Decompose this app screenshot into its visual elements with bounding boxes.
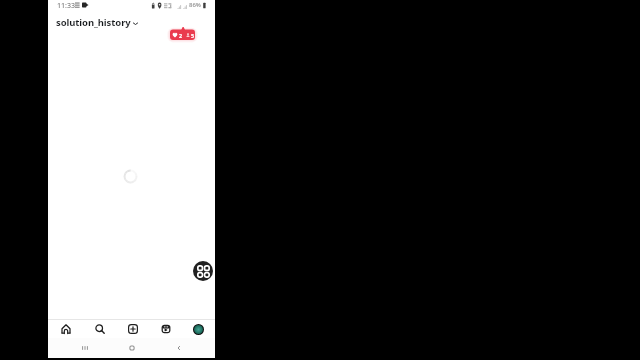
button[interactable]: solution_history [56,16,138,29]
button[interactable]: Home [120,338,144,358]
staticText: 2 [179,32,183,39]
staticText: solution_history [56,16,131,29]
staticText: 86% [189,1,201,9]
button[interactable]: Reels [149,320,182,338]
button[interactable]: Home [49,320,83,338]
button[interactable]: Profile [182,320,215,338]
staticText: 5 [191,32,195,39]
button[interactable]: Back [167,338,191,358]
button[interactable]: Search [83,320,116,338]
staticText: 11:33 [57,0,76,10]
button[interactable]: Create [116,320,149,338]
button[interactable]: Recents [73,338,97,358]
button[interactable]: Apps grid [193,261,213,281]
button[interactable]: 2 likes, 5 followers [170,27,195,40]
